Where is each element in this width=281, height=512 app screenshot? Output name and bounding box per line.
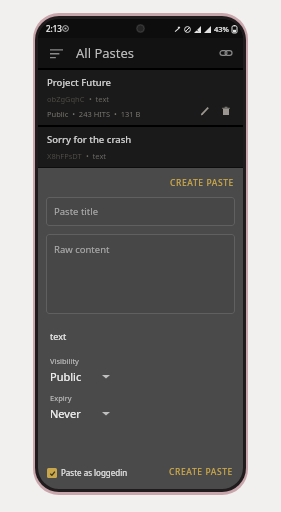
staticText: obZgGqhC: [47, 94, 85, 104]
button[interactable]: Delete: [217, 102, 234, 119]
staticText: Sorry for the crash: [47, 133, 132, 146]
staticText: Project Future: [47, 76, 112, 89]
button[interactable]: Expiry: [38, 393, 243, 421]
button[interactable]: CREATE PASTE: [161, 173, 243, 193]
staticText: All Pastes: [76, 44, 135, 62]
button[interactable]: CREATE PASTE: [164, 462, 238, 482]
button[interactable]: Project Future: [38, 70, 243, 125]
staticText: CREATE PASTE: [170, 177, 234, 189]
button[interactable]: Paste title: [46, 197, 235, 226]
button[interactable]: Link: [213, 40, 239, 66]
staticText: Paste title: [54, 205, 99, 218]
staticText: Public • 243 HITS • 131 B: [47, 109, 141, 119]
staticText: 43%: [214, 24, 229, 34]
staticText: X8hFPsDT: [47, 151, 82, 161]
staticText: Paste as loggedin: [61, 467, 128, 478]
staticText: Public: [50, 369, 82, 384]
staticText: Raw content: [54, 243, 110, 256]
button[interactable]: Raw content: [46, 234, 235, 314]
button[interactable]: Sort: [43, 40, 69, 66]
button[interactable]: Sorry for the crash: [38, 127, 243, 167]
staticText: Visibility: [50, 356, 79, 366]
button[interactable]: Visibility: [38, 356, 243, 384]
staticText: Never: [50, 406, 81, 421]
button[interactable]: Paste as loggedin: [44, 464, 131, 481]
staticText: • text: [85, 94, 110, 104]
staticText: • text: [82, 151, 107, 161]
button[interactable]: Edit: [196, 102, 213, 119]
staticText: text: [50, 330, 67, 342]
staticText: Expiry: [50, 393, 72, 403]
staticText: CREATE PASTE: [169, 466, 233, 478]
staticText: 2:13: [46, 23, 62, 34]
button[interactable]: text: [38, 326, 243, 346]
